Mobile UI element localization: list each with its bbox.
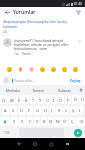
button[interactable]: X: [19, 117, 26, 126]
button[interactable]: H: [42, 106, 48, 115]
staticText: I: [79, 108, 81, 113]
staticText: Yorumlar: [13, 9, 36, 16]
staticText: 0: [67, 96, 69, 99]
button[interactable]: Yanıtla: [22, 52, 31, 56]
button[interactable]: #kapakpaylas #kuzupaylas kimi kuzey kull…: [0, 17, 85, 36]
staticText: A: [4, 108, 7, 113]
button[interactable]: Emoji: [61, 66, 68, 73]
staticText: Yorum ekle...: [14, 78, 35, 83]
button[interactable]: Ş: [70, 106, 76, 115]
staticText: Ö: [63, 119, 67, 124]
staticText: Ü: [81, 97, 84, 102]
button[interactable]: Voice input: [77, 85, 85, 94]
button[interactable]: 1: [0, 95, 7, 104]
button[interactable]: D: [18, 106, 25, 115]
button[interactable]: Ü: [79, 95, 85, 104]
button[interactable]: J: [49, 106, 55, 115]
button[interactable]: Emoji: [50, 66, 57, 73]
button[interactable]: Tamam: [25, 85, 51, 94]
button[interactable]: üyeüyem01 Sonucland ameyd hapleblar, sil…: [0, 36, 85, 58]
staticText: H: [44, 108, 47, 113]
button[interactable]: B: [41, 117, 47, 126]
staticText: #kapakpaylas #kuzupaylas kimi kuzey kull…: [3, 19, 82, 29]
button[interactable]: Keyboard: [59, 138, 75, 150]
button[interactable]: Send: [71, 128, 84, 137]
staticText: ,: [15, 130, 16, 135]
button[interactable]: Emoji: [17, 66, 24, 73]
button[interactable]: Period: [65, 128, 70, 137]
button[interactable]: Ö: [62, 117, 68, 126]
staticText: F: [28, 108, 31, 113]
staticText: Tamam: [32, 88, 44, 92]
staticText: L: [65, 108, 68, 113]
button[interactable]: Paylaş: [69, 77, 82, 84]
staticText: D: [20, 108, 23, 113]
button[interactable]: S: [10, 106, 17, 115]
button[interactable]: N: [48, 117, 54, 126]
button[interactable]: Backspace: [76, 117, 85, 126]
button[interactable]: V: [34, 117, 40, 126]
button[interactable]: 5: [30, 95, 36, 104]
staticText: J: [51, 108, 53, 113]
staticText: X: [21, 119, 24, 124]
staticText: Merhaba: [6, 88, 20, 92]
button[interactable]: Back: [11, 138, 27, 150]
button[interactable]: I: [77, 106, 83, 115]
button[interactable]: Filter: [74, 8, 82, 16]
staticText: O: [59, 98, 63, 103]
button[interactable]: L: [63, 106, 69, 115]
button[interactable]: 3: [16, 95, 22, 104]
button[interactable]: 7: [44, 95, 50, 104]
staticText: T: [32, 98, 35, 103]
button[interactable]: Symbols: [1, 128, 12, 137]
staticText: üyeüyem01 Sonucland ameyd hapleblar, sil…: [14, 38, 74, 51]
button[interactable]: 9: [58, 95, 64, 104]
button[interactable]: F: [26, 106, 33, 115]
button[interactable]: 8: [51, 95, 57, 104]
button[interactable]: 2: [8, 95, 15, 104]
button[interactable]: Recents: [43, 138, 59, 150]
staticText: R: [25, 98, 28, 103]
staticText: Paylaş: [70, 78, 81, 83]
button[interactable]: A: [2, 106, 9, 115]
staticText: 3: [18, 96, 20, 99]
staticText: W: [10, 98, 14, 103]
button[interactable]: Emoji: [28, 66, 35, 73]
button[interactable]: M: [55, 117, 61, 126]
staticText: Y: [39, 98, 42, 103]
staticText: Ç: [71, 119, 74, 124]
button[interactable]: Comma: [13, 128, 18, 137]
button[interactable]: 0: [65, 95, 71, 104]
button[interactable]: Yorum ekle...: [12, 78, 69, 83]
button[interactable]: Kullanıcı: [51, 85, 77, 94]
staticText: N: [49, 119, 53, 124]
button[interactable]: Back: [3, 8, 11, 16]
button[interactable]: Merhaba: [0, 85, 25, 94]
staticText: E: [18, 98, 21, 103]
staticText: Kullanıcı: [58, 88, 71, 92]
button[interactable]: G: [34, 106, 41, 115]
button[interactable]: 6: [37, 95, 43, 104]
button[interactable]: K: [56, 106, 62, 115]
button[interactable]: C: [27, 117, 33, 126]
button[interactable]: Shift: [0, 117, 10, 126]
staticText: Q: [2, 98, 6, 103]
staticText: Ğ: [74, 97, 77, 102]
staticText: 01:45: [74, 2, 83, 6]
staticText: Z: [13, 119, 16, 124]
button[interactable]: Ç: [69, 117, 75, 126]
staticText: G: [36, 108, 39, 113]
button[interactable]: Emoji: [72, 66, 79, 73]
staticText: 7: [46, 96, 48, 99]
staticText: 4: [25, 96, 27, 99]
button[interactable]: Like: [76, 38, 82, 44]
button[interactable]: Home: [27, 138, 43, 150]
button[interactable]: Ğ: [72, 95, 78, 104]
button[interactable]: Z: [11, 117, 18, 126]
button[interactable]: Emoji: [39, 66, 46, 73]
button[interactable]: 4: [23, 95, 29, 104]
staticText: .: [67, 130, 68, 135]
staticText: 5: [32, 96, 34, 99]
button[interactable]: Emoji: [6, 66, 13, 73]
